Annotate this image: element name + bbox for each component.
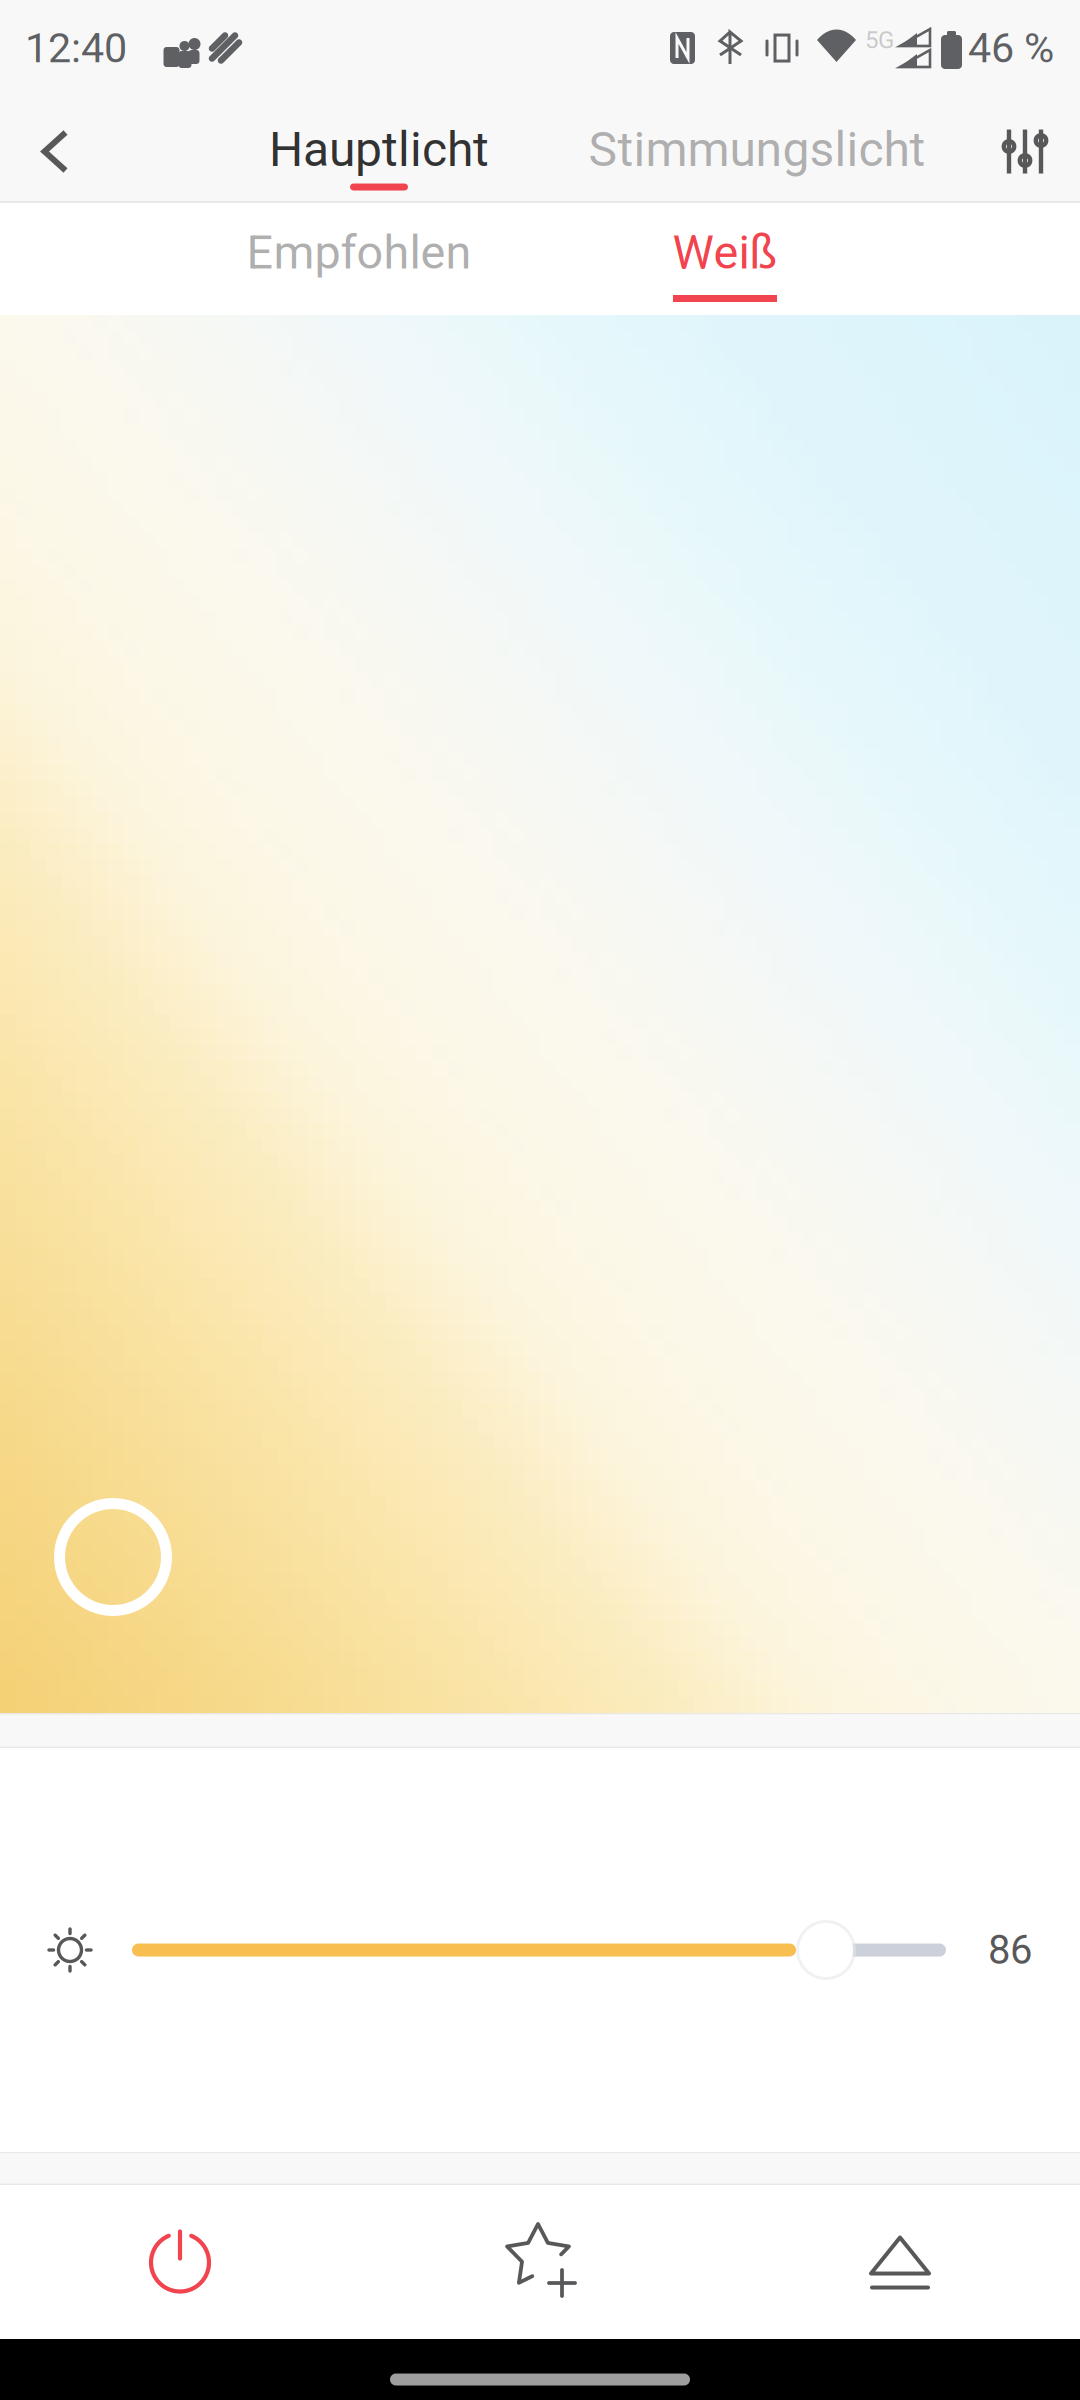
button[interactable]: Brightness	[132, 1918, 946, 1982]
button[interactable]: Eject	[720, 2185, 1080, 2339]
staticText: 12:40	[25, 24, 127, 72]
button[interactable]: Adjust settings	[970, 101, 1080, 201]
button[interactable]: Empfohlen	[176, 203, 542, 315]
button[interactable]: Stimmungslicht	[590, 108, 924, 202]
button[interactable]: Weiß	[542, 203, 908, 315]
button[interactable]: Add to favourites	[360, 2185, 720, 2339]
button[interactable]: Power	[0, 2185, 360, 2339]
staticText: Empfohlen	[246, 225, 471, 280]
staticText: Weiß	[672, 225, 777, 280]
staticText: 86	[988, 1927, 1032, 1973]
staticText: 46 %	[968, 24, 1054, 72]
button[interactable]: Hauptlicht	[168, 108, 590, 202]
button[interactable]: Selected white tone	[38, 1482, 188, 1632]
button[interactable]: Back	[0, 101, 110, 201]
staticText: 5G	[865, 26, 894, 54]
staticText: Hauptlicht	[269, 121, 489, 178]
staticText: Stimmungslicht	[588, 121, 925, 178]
